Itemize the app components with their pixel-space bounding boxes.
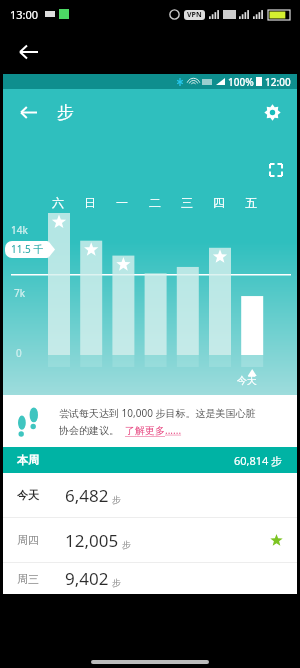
staticText: 周三 [17,572,39,586]
staticText: VPN [187,10,202,20]
button[interactable]: Back [11,95,45,129]
staticText: 7k [14,286,26,300]
staticText: 今天 [237,374,257,387]
button[interactable]: Expand [263,157,289,183]
staticText: 二 [149,195,161,210]
staticText: 14k [11,223,28,237]
staticText: 协会的建议。 [59,423,125,437]
staticText: 四 [213,195,225,210]
staticText: 6,482 [65,484,109,507]
staticText: 今天 [17,488,39,502]
button[interactable]: Settings [255,95,289,129]
staticText: 60,814 步 [234,453,283,468]
staticText: 三 [181,195,193,210]
staticText: 12:00 [265,75,291,89]
staticText: 0 [16,346,22,360]
staticText: 本周 [17,453,39,467]
staticText: 步 [122,539,131,550]
button[interactable]: 周三 [3,563,297,594]
staticText: 了解更多...... [125,423,182,437]
staticText: 六 [52,195,64,210]
staticText: 100% [228,75,254,89]
staticText: 9,402 [65,567,109,590]
staticText: 11.5 千 [11,242,44,256]
button[interactable]: 尝试每天达到 10,000 步目标。这是美国心脏 [3,395,297,447]
staticText: 尝试每天达到 10,000 步目标。这是美国心脏 [59,406,256,420]
button[interactable]: 了解更多...... [125,423,182,437]
staticText: 步 [112,494,121,505]
staticText: 周四 [17,533,39,547]
staticText: 五 [245,195,257,210]
button[interactable]: 周四 [3,518,297,562]
staticText: 13:00 [10,7,39,22]
button[interactable]: 今天 [3,473,297,517]
staticText: 一 [116,195,128,210]
staticText: 12,005 [65,529,119,552]
staticText: 步 [57,102,74,123]
button[interactable]: Back [8,32,48,72]
staticText: 步 [112,577,121,588]
button[interactable]: 本周 [3,447,297,473]
staticText: 日 [84,195,96,210]
